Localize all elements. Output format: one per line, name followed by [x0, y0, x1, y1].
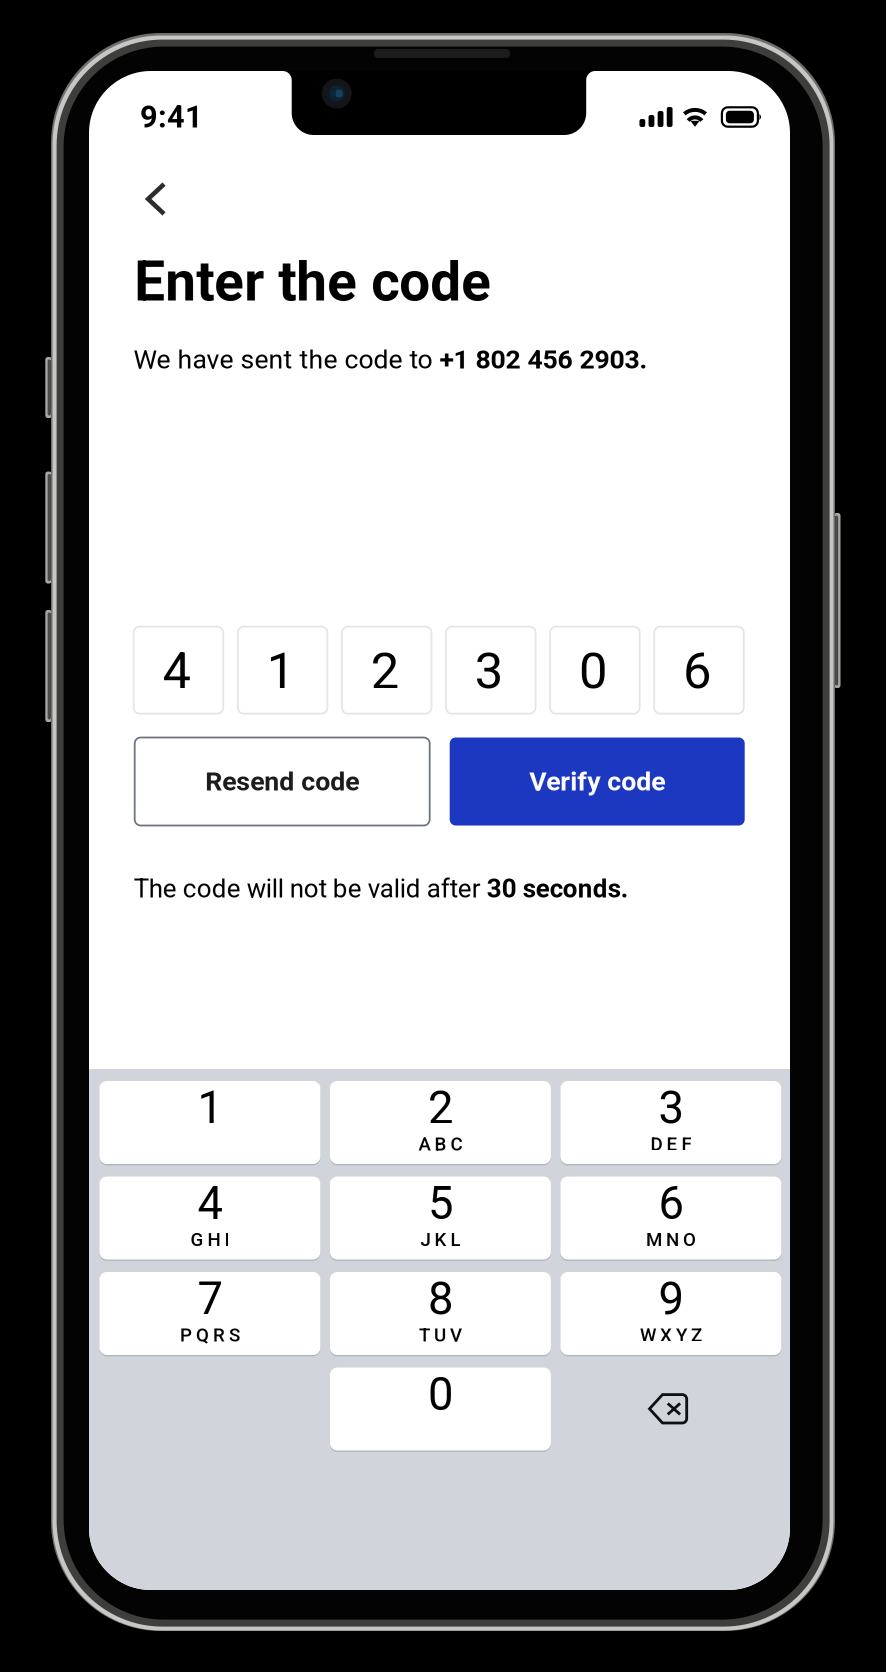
staticText: 8	[428, 1272, 453, 1325]
staticText: J K L	[420, 1229, 460, 1250]
staticText: 9:41	[140, 99, 203, 135]
staticText: D E F	[650, 1133, 691, 1155]
button[interactable]: 3	[560, 1081, 781, 1164]
button[interactable]: 2	[330, 1081, 551, 1164]
staticText: 4	[162, 641, 190, 701]
button[interactable]: Delete	[560, 1367, 781, 1450]
staticText: 1	[197, 1081, 222, 1134]
staticText: 2	[428, 1081, 453, 1134]
staticText: 3	[658, 1081, 683, 1134]
button[interactable]: 9	[560, 1272, 781, 1355]
staticText: 6	[658, 1177, 683, 1230]
staticText: 2	[371, 641, 399, 701]
button[interactable]: 6	[560, 1176, 781, 1259]
staticText: Verify code	[529, 766, 665, 797]
staticText: 7	[197, 1272, 222, 1325]
staticText: T U V	[419, 1324, 462, 1346]
button[interactable]: 4	[99, 1176, 320, 1259]
staticText: 3	[475, 641, 503, 701]
button[interactable]: Verify code	[450, 737, 745, 825]
staticText: A B C	[418, 1133, 462, 1155]
staticText: 4	[197, 1177, 222, 1230]
button[interactable]: 1	[99, 1081, 320, 1164]
staticText: 1	[267, 641, 295, 701]
staticText: M N O	[646, 1229, 696, 1250]
staticText: 0	[428, 1368, 453, 1421]
staticText: P Q R S	[180, 1324, 240, 1346]
button[interactable]: 0	[330, 1367, 551, 1450]
staticText: W X Y Z	[640, 1324, 702, 1346]
staticText: 6	[683, 641, 711, 701]
staticText: We have sent the code to	[134, 344, 440, 375]
button[interactable]: 5	[330, 1176, 551, 1259]
button[interactable]: Resend code	[135, 737, 430, 825]
staticText: 5	[428, 1177, 453, 1230]
staticText: +1 802 456 2903.	[440, 344, 648, 375]
staticText: The code will not be valid after	[134, 873, 487, 904]
staticText: Enter the code	[134, 250, 491, 314]
staticText: 9	[658, 1272, 683, 1325]
button[interactable]: 7	[99, 1272, 320, 1355]
button[interactable]: 8	[330, 1272, 551, 1355]
staticText: G H I	[190, 1229, 229, 1250]
staticText: 0	[579, 641, 607, 701]
staticText: Resend code	[205, 766, 359, 797]
button[interactable]: Back	[121, 164, 191, 234]
staticText: 30 seconds.	[487, 873, 629, 904]
